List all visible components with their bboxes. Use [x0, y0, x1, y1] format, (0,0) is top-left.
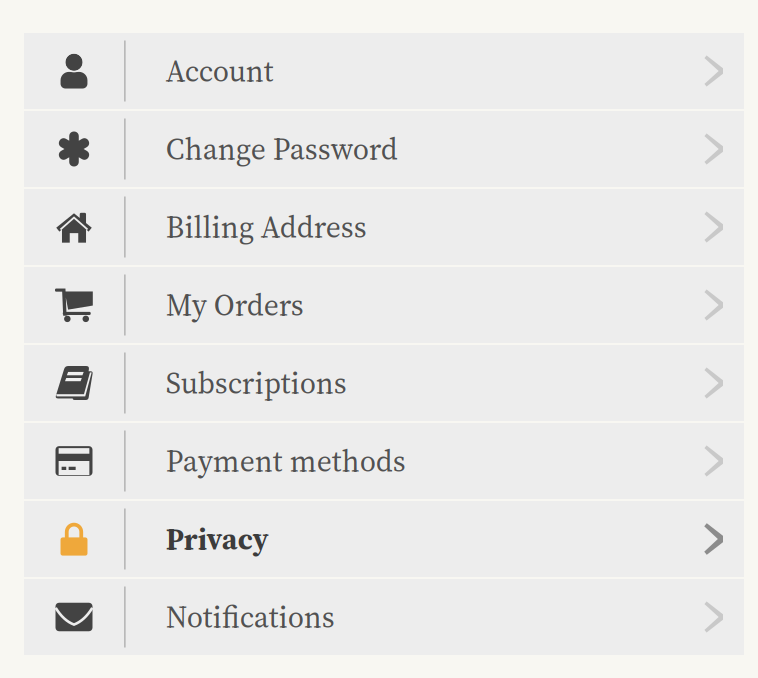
button[interactable]: Billing Address — [24, 189, 744, 265]
button[interactable]: Account — [24, 33, 744, 109]
button[interactable]: My Orders — [24, 267, 744, 343]
button[interactable]: Payment methods — [24, 423, 744, 499]
button[interactable]: Notifications — [24, 579, 744, 655]
staticText: My Orders — [166, 285, 304, 325]
staticText: Account — [166, 51, 274, 91]
button[interactable]: Subscriptions — [24, 345, 744, 421]
staticText: Payment methods — [166, 441, 406, 481]
button[interactable]: Privacy — [24, 501, 744, 577]
staticText: Notifications — [166, 597, 335, 637]
staticText: Change Password — [166, 129, 398, 169]
staticText: Subscriptions — [166, 363, 347, 403]
staticText: Billing Address — [166, 207, 367, 247]
button[interactable]: Change Password — [24, 111, 744, 187]
staticText: Privacy — [166, 519, 269, 559]
